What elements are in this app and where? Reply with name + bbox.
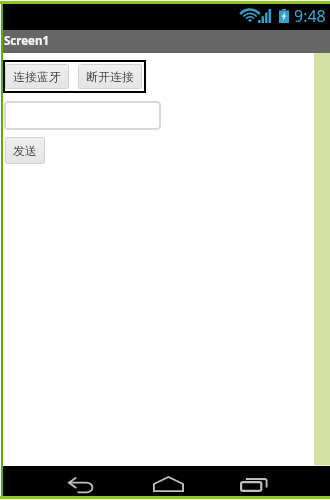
button[interactable]: 断开连接	[78, 64, 142, 89]
button[interactable]: Back	[53, 470, 109, 500]
button[interactable]: 连接蓝牙	[5, 64, 69, 89]
staticText: Screen1	[4, 33, 49, 49]
button[interactable]: 发送	[5, 137, 45, 164]
staticText: 断开连接	[86, 69, 134, 84]
staticText: 9:48	[294, 5, 326, 27]
button[interactable]	[4, 101, 161, 130]
button[interactable]: Recents	[226, 469, 282, 499]
staticText: 连接蓝牙	[13, 69, 61, 84]
staticText: 发送	[13, 143, 37, 158]
button[interactable]: Home	[140, 469, 196, 499]
